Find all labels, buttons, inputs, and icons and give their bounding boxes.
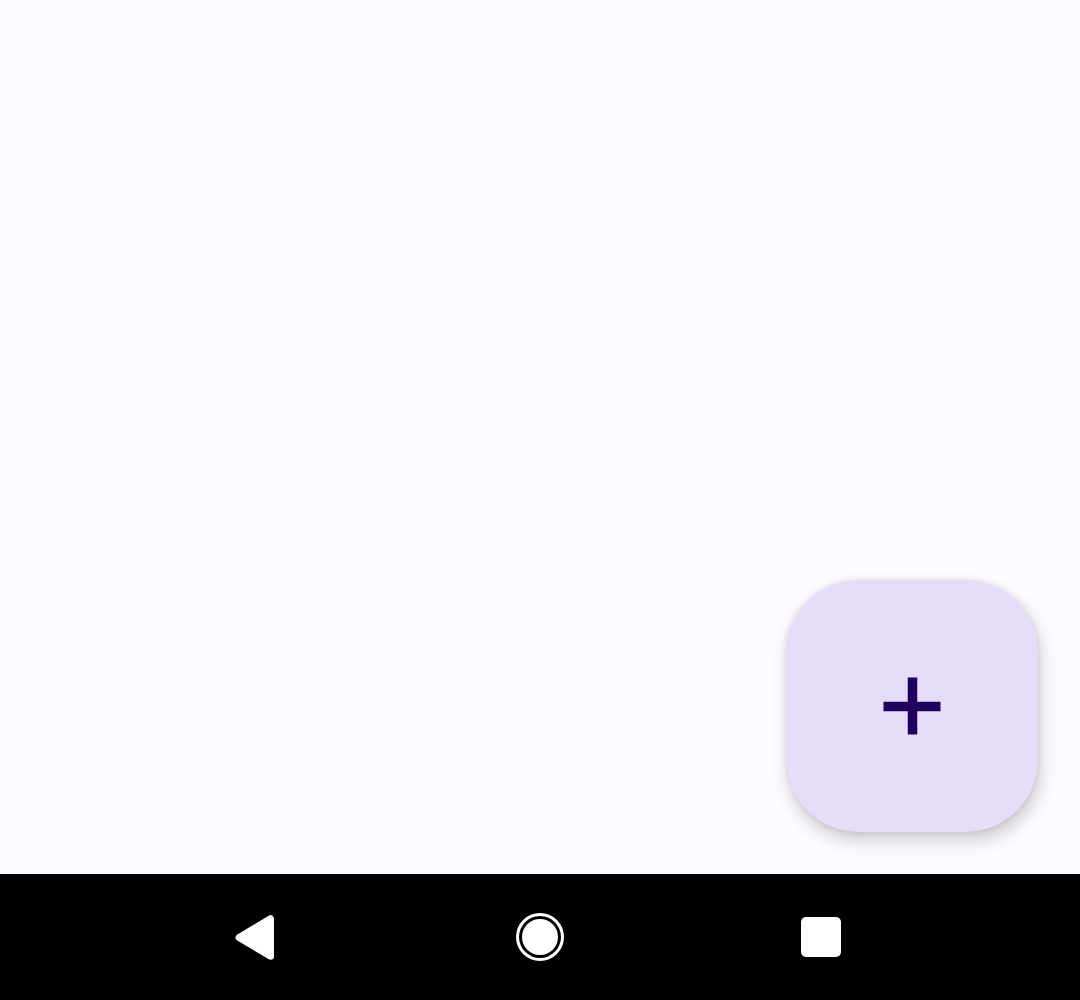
button[interactable]: Back [187,874,324,1000]
button[interactable]: Add [786,580,1038,832]
button[interactable]: Home [471,874,609,1000]
button[interactable]: Recent apps [752,874,890,1000]
